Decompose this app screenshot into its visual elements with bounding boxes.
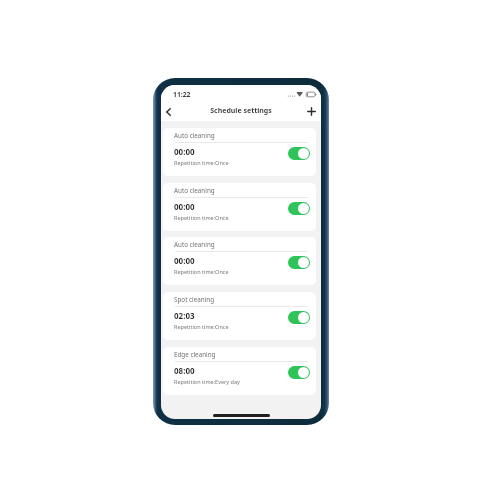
button[interactable]: Edge cleaning [163,347,316,395]
staticText: 00:00 [174,255,195,266]
button[interactable]: Toggle Auto cleaning schedule [288,256,310,269]
other: Signal, wifi and battery status [286,91,317,98]
button[interactable]: Back [161,101,178,121]
button[interactable]: Add schedule [304,101,321,121]
button[interactable]: Toggle Auto cleaning schedule [288,147,310,160]
staticText: 00:00 [174,201,195,212]
staticText: Auto cleaning [174,186,215,195]
button[interactable]: Toggle Edge cleaning schedule [288,366,310,379]
staticText: Repetition time:Once [174,159,229,166]
button[interactable]: Toggle Spot cleaning schedule [288,311,310,324]
staticText: Auto cleaning [174,131,215,140]
staticText: Edge cleaning [174,350,216,359]
button[interactable]: Spot cleaning [163,292,316,340]
staticText: Spot cleaning [174,295,215,304]
staticText: Repetition time:Every day [174,378,240,385]
staticText: 11:22 [173,90,191,99]
staticText: Schedule settings [210,106,272,116]
button[interactable]: Auto cleaning [163,128,316,176]
staticText: 02:03 [174,310,195,321]
button[interactable]: Toggle Auto cleaning schedule [288,202,310,215]
staticText: 08:00 [174,365,195,376]
staticText: 00:00 [174,146,195,157]
staticText: Repetition time:Once [174,214,229,221]
staticText: Repetition time:Once [174,268,229,275]
button[interactable]: Auto cleaning [163,237,316,285]
button[interactable]: Auto cleaning [163,183,316,231]
staticText: Repetition time:Once [174,323,229,330]
staticText: Auto cleaning [174,240,215,249]
